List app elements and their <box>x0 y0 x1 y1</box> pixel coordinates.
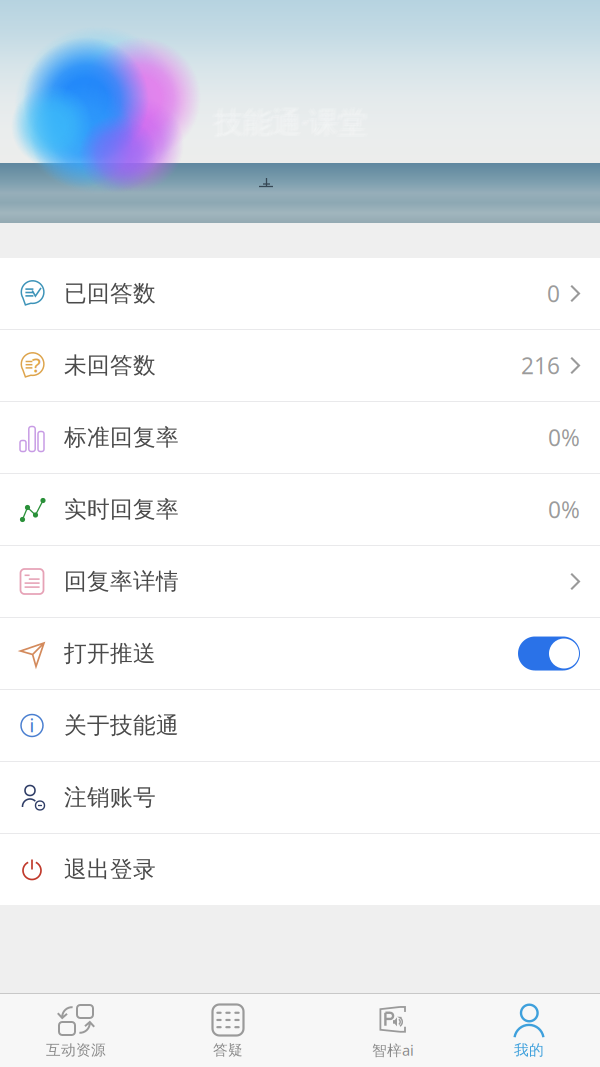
button[interactable]: 打开推送 <box>0 618 600 689</box>
button[interactable]: 退出登录 <box>0 834 600 905</box>
staticText: 0% <box>548 494 580 524</box>
staticText: 216 <box>521 350 560 380</box>
button[interactable]: 已回答数 <box>0 258 600 329</box>
button[interactable]: 注销账号 <box>0 762 600 833</box>
staticText: 互动资源 <box>46 1041 106 1059</box>
staticText: i <box>29 714 34 737</box>
button[interactable]: i <box>0 690 600 761</box>
staticText: 智梓ai <box>372 1040 414 1060</box>
staticText: 注销账号 <box>64 784 156 811</box>
button[interactable]: 实时回复率 <box>0 474 600 545</box>
button[interactable]: 回复率详情 <box>0 546 600 617</box>
staticText: 标准回复率 <box>64 424 179 451</box>
staticText: 关于技能通 <box>64 712 179 739</box>
staticText: 答疑 <box>213 1041 243 1059</box>
button[interactable]: 我的 <box>450 993 600 1067</box>
staticText: 我的 <box>514 1041 544 1059</box>
staticText: 已回答数 <box>64 280 156 307</box>
staticText: 技能通·课堂 <box>216 101 369 140</box>
staticText: 技能通·课堂 <box>212 103 365 142</box>
button[interactable]: 标准回复率 <box>0 402 600 473</box>
staticText: 0% <box>548 422 580 452</box>
button[interactable]: ? <box>0 330 600 401</box>
staticText: 退出登录 <box>64 856 156 883</box>
staticText: 0 <box>547 278 560 308</box>
staticText: ? <box>32 351 41 378</box>
button[interactable]: 智梓ai <box>300 993 450 1067</box>
staticText: 技能通·课堂 <box>215 103 368 142</box>
staticText: 技能通·课堂 <box>213 101 366 140</box>
button[interactable]: 互动资源 <box>0 993 150 1067</box>
staticText: 打开推送 <box>64 640 156 667</box>
staticText: 回复率详情 <box>64 568 179 595</box>
staticText: 实时回复率 <box>64 496 179 523</box>
button[interactable]: 答疑 <box>150 993 300 1067</box>
staticText: 未回答数 <box>64 352 156 379</box>
